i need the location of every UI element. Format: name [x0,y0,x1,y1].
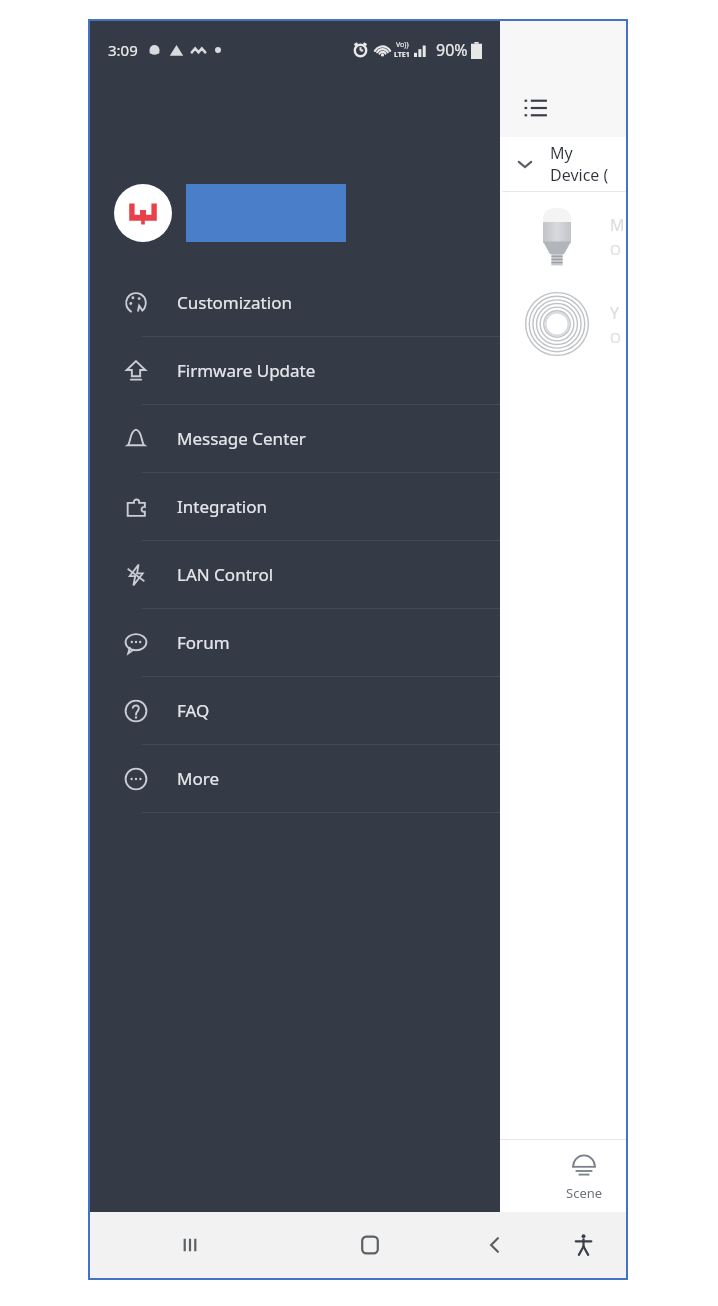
staticText: FAQ [177,699,210,722]
staticText: Message Center [177,427,306,450]
button[interactable]: Integration [90,473,500,540]
staticText: Vo)) [396,40,409,50]
staticText: Scene [566,1184,603,1202]
button[interactable]: Accessibility [540,1212,626,1278]
staticText: 3:09 [108,40,138,60]
button[interactable]: Recents [90,1212,290,1278]
button[interactable]: Device list [514,86,558,130]
button[interactable]: Y [90,280,626,368]
button[interactable]: Customization [90,269,500,336]
staticText: 90% [436,39,468,61]
staticText: M [610,214,625,236]
button[interactable]: Firmware Update [90,337,500,404]
button[interactable]: M [90,192,626,280]
button[interactable]: Message Center [90,405,500,472]
button[interactable]: More [90,745,500,812]
staticText: Y [610,302,620,324]
staticText: LAN Control [177,563,274,586]
staticText: Integration [177,495,267,518]
staticText: Customization [177,291,292,314]
button[interactable]: Back [450,1212,540,1278]
button[interactable]: Scene [542,1150,626,1202]
staticText: My Device ( [550,142,626,186]
button[interactable]: My Device ( [90,137,626,191]
staticText: O [610,328,621,347]
staticText: O [610,240,621,259]
button[interactable]: Forum [90,609,500,676]
button[interactable] [90,169,500,257]
button[interactable]: FAQ [90,677,500,744]
staticText: Firmware Update [177,359,316,382]
button[interactable]: Home [290,1212,450,1278]
button[interactable]: LAN Control [90,541,500,608]
staticText: Forum [177,631,230,654]
staticText: LTE1 [394,50,410,60]
staticText: More [177,767,219,790]
